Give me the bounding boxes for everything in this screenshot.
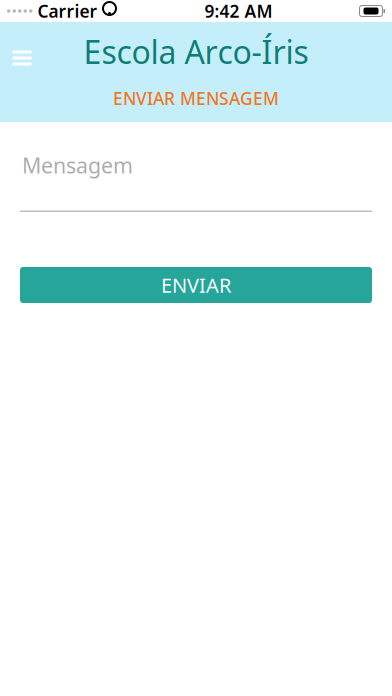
button[interactable]: ENVIAR MENSAGEM [101, 81, 291, 116]
staticText: ENVIAR MENSAGEM [113, 87, 279, 110]
staticText: Carrier [37, 0, 97, 22]
staticText: 9:42 AM [204, 0, 272, 22]
button[interactable]: Menu [0, 36, 44, 80]
button[interactable]: ENVIAR [20, 267, 372, 303]
staticText: Escola Arco-Íris [83, 30, 308, 73]
staticText: Mensagem [22, 151, 133, 179]
staticText: ENVIAR [161, 272, 231, 298]
